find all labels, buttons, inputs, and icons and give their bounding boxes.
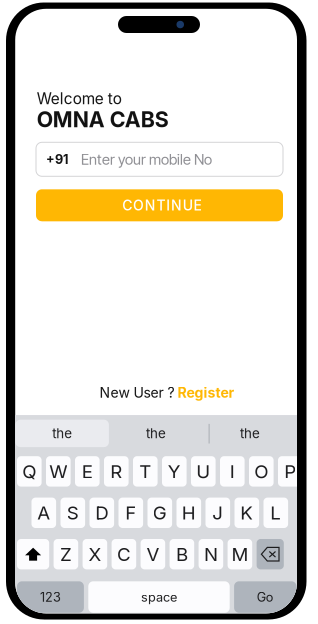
button[interactable]: P bbox=[278, 456, 303, 487]
staticText: V bbox=[146, 543, 159, 565]
staticText: G bbox=[153, 501, 167, 524]
staticText: Go bbox=[257, 589, 274, 605]
button[interactable]: Y bbox=[162, 456, 187, 487]
staticText: X bbox=[88, 543, 101, 565]
staticText: P bbox=[284, 460, 296, 483]
staticText: H bbox=[182, 501, 196, 524]
button[interactable]: G bbox=[147, 498, 172, 528]
staticText: OMNA CABS bbox=[37, 107, 169, 132]
staticText: M bbox=[231, 543, 248, 565]
staticText: Z bbox=[60, 543, 72, 565]
button[interactable]: L bbox=[263, 498, 288, 528]
button[interactable]: I bbox=[220, 456, 245, 487]
button[interactable]: D bbox=[89, 498, 114, 528]
staticText: T bbox=[139, 460, 151, 483]
button[interactable]: B bbox=[170, 539, 194, 569]
button[interactable]: H bbox=[176, 498, 201, 528]
staticText: Y bbox=[168, 460, 181, 483]
button[interactable]: Delete bbox=[257, 539, 284, 569]
button[interactable]: Shift bbox=[17, 539, 49, 569]
staticText: L bbox=[270, 501, 281, 524]
button[interactable]: J bbox=[205, 498, 230, 528]
staticText: U bbox=[196, 460, 210, 483]
button[interactable]: space bbox=[88, 581, 230, 613]
staticText: O bbox=[254, 460, 268, 483]
staticText: A bbox=[37, 501, 50, 524]
button[interactable]: the bbox=[15, 420, 109, 447]
button[interactable]: Go bbox=[234, 581, 296, 613]
staticText: Q bbox=[22, 460, 36, 483]
staticText: Register bbox=[174, 384, 234, 401]
button[interactable]: Register bbox=[174, 384, 234, 401]
staticText: CONTINUE bbox=[122, 197, 201, 214]
button[interactable]: F bbox=[118, 498, 143, 528]
staticText: J bbox=[212, 501, 223, 524]
button[interactable]: O bbox=[249, 456, 274, 487]
staticText: N bbox=[204, 543, 218, 565]
button[interactable]: N bbox=[199, 539, 223, 569]
staticText: the bbox=[52, 425, 72, 441]
staticText: E bbox=[82, 460, 93, 483]
button[interactable]: the bbox=[203, 420, 297, 447]
button[interactable]: V bbox=[141, 539, 165, 569]
button[interactable]: Z bbox=[54, 539, 78, 569]
button[interactable]: A bbox=[31, 498, 56, 528]
button[interactable]: S bbox=[60, 498, 85, 528]
staticText: F bbox=[125, 501, 136, 524]
button[interactable]: R bbox=[104, 456, 129, 487]
button[interactable]: X bbox=[83, 539, 107, 569]
staticText: I bbox=[230, 460, 235, 483]
staticText: B bbox=[176, 543, 188, 565]
button[interactable]: +91 bbox=[36, 142, 283, 176]
button[interactable]: U bbox=[191, 456, 216, 487]
staticText: space bbox=[141, 589, 177, 605]
staticText: S bbox=[67, 501, 79, 524]
button[interactable]: 123 bbox=[17, 581, 84, 613]
staticText: +91 bbox=[46, 152, 68, 167]
button[interactable]: K bbox=[234, 498, 259, 528]
staticText: K bbox=[240, 501, 253, 524]
staticText: Enter your mobile No bbox=[81, 150, 212, 168]
button[interactable]: Q bbox=[17, 456, 42, 487]
staticText: Welcome to bbox=[37, 89, 122, 108]
button[interactable]: C bbox=[112, 539, 136, 569]
staticText: New User ? bbox=[99, 384, 174, 401]
button[interactable]: CONTINUE bbox=[36, 189, 283, 221]
staticText: the bbox=[240, 425, 260, 441]
button[interactable]: E bbox=[75, 456, 100, 487]
staticText: W bbox=[49, 460, 67, 483]
staticText: 123 bbox=[40, 589, 61, 605]
staticText: D bbox=[95, 501, 108, 524]
staticText: C bbox=[117, 543, 131, 565]
button[interactable]: W bbox=[46, 456, 71, 487]
staticText: the bbox=[146, 425, 166, 441]
button[interactable]: the bbox=[109, 420, 203, 447]
button[interactable]: M bbox=[228, 539, 252, 569]
button[interactable]: T bbox=[133, 456, 158, 487]
staticText: R bbox=[110, 460, 122, 483]
